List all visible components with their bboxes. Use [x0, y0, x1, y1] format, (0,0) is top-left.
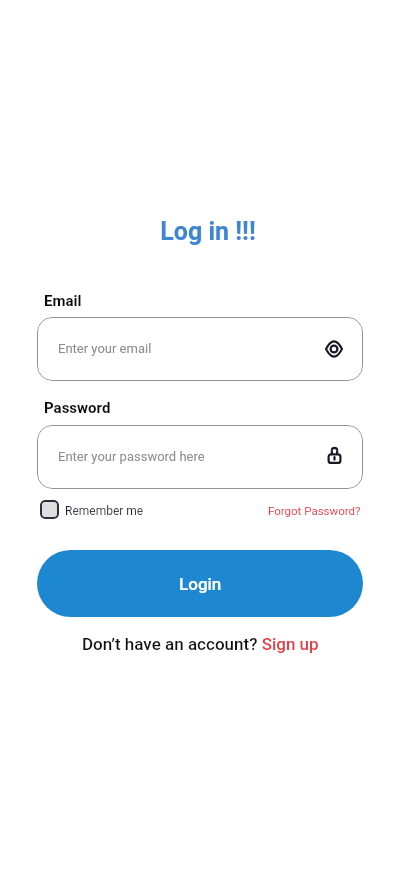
button[interactable]: Don’t have an account? Sign up [82, 634, 319, 654]
staticText: Enter your email [58, 341, 152, 356]
button[interactable]: Enter your email [37, 317, 363, 381]
button[interactable] [322, 337, 346, 361]
button[interactable] [322, 445, 346, 469]
staticText: Enter your password here [58, 449, 205, 464]
staticText: Log in !!! [8, 217, 400, 246]
staticText: Email [44, 292, 82, 310]
staticText: Password [44, 399, 111, 417]
staticText: Remember me [65, 504, 144, 518]
button[interactable]: Enter your password here [37, 425, 363, 489]
button[interactable]: Remember me [40, 500, 144, 519]
button[interactable]: Login [37, 550, 363, 617]
staticText: Login [179, 574, 222, 594]
button[interactable]: Forgot Password? [268, 504, 361, 517]
